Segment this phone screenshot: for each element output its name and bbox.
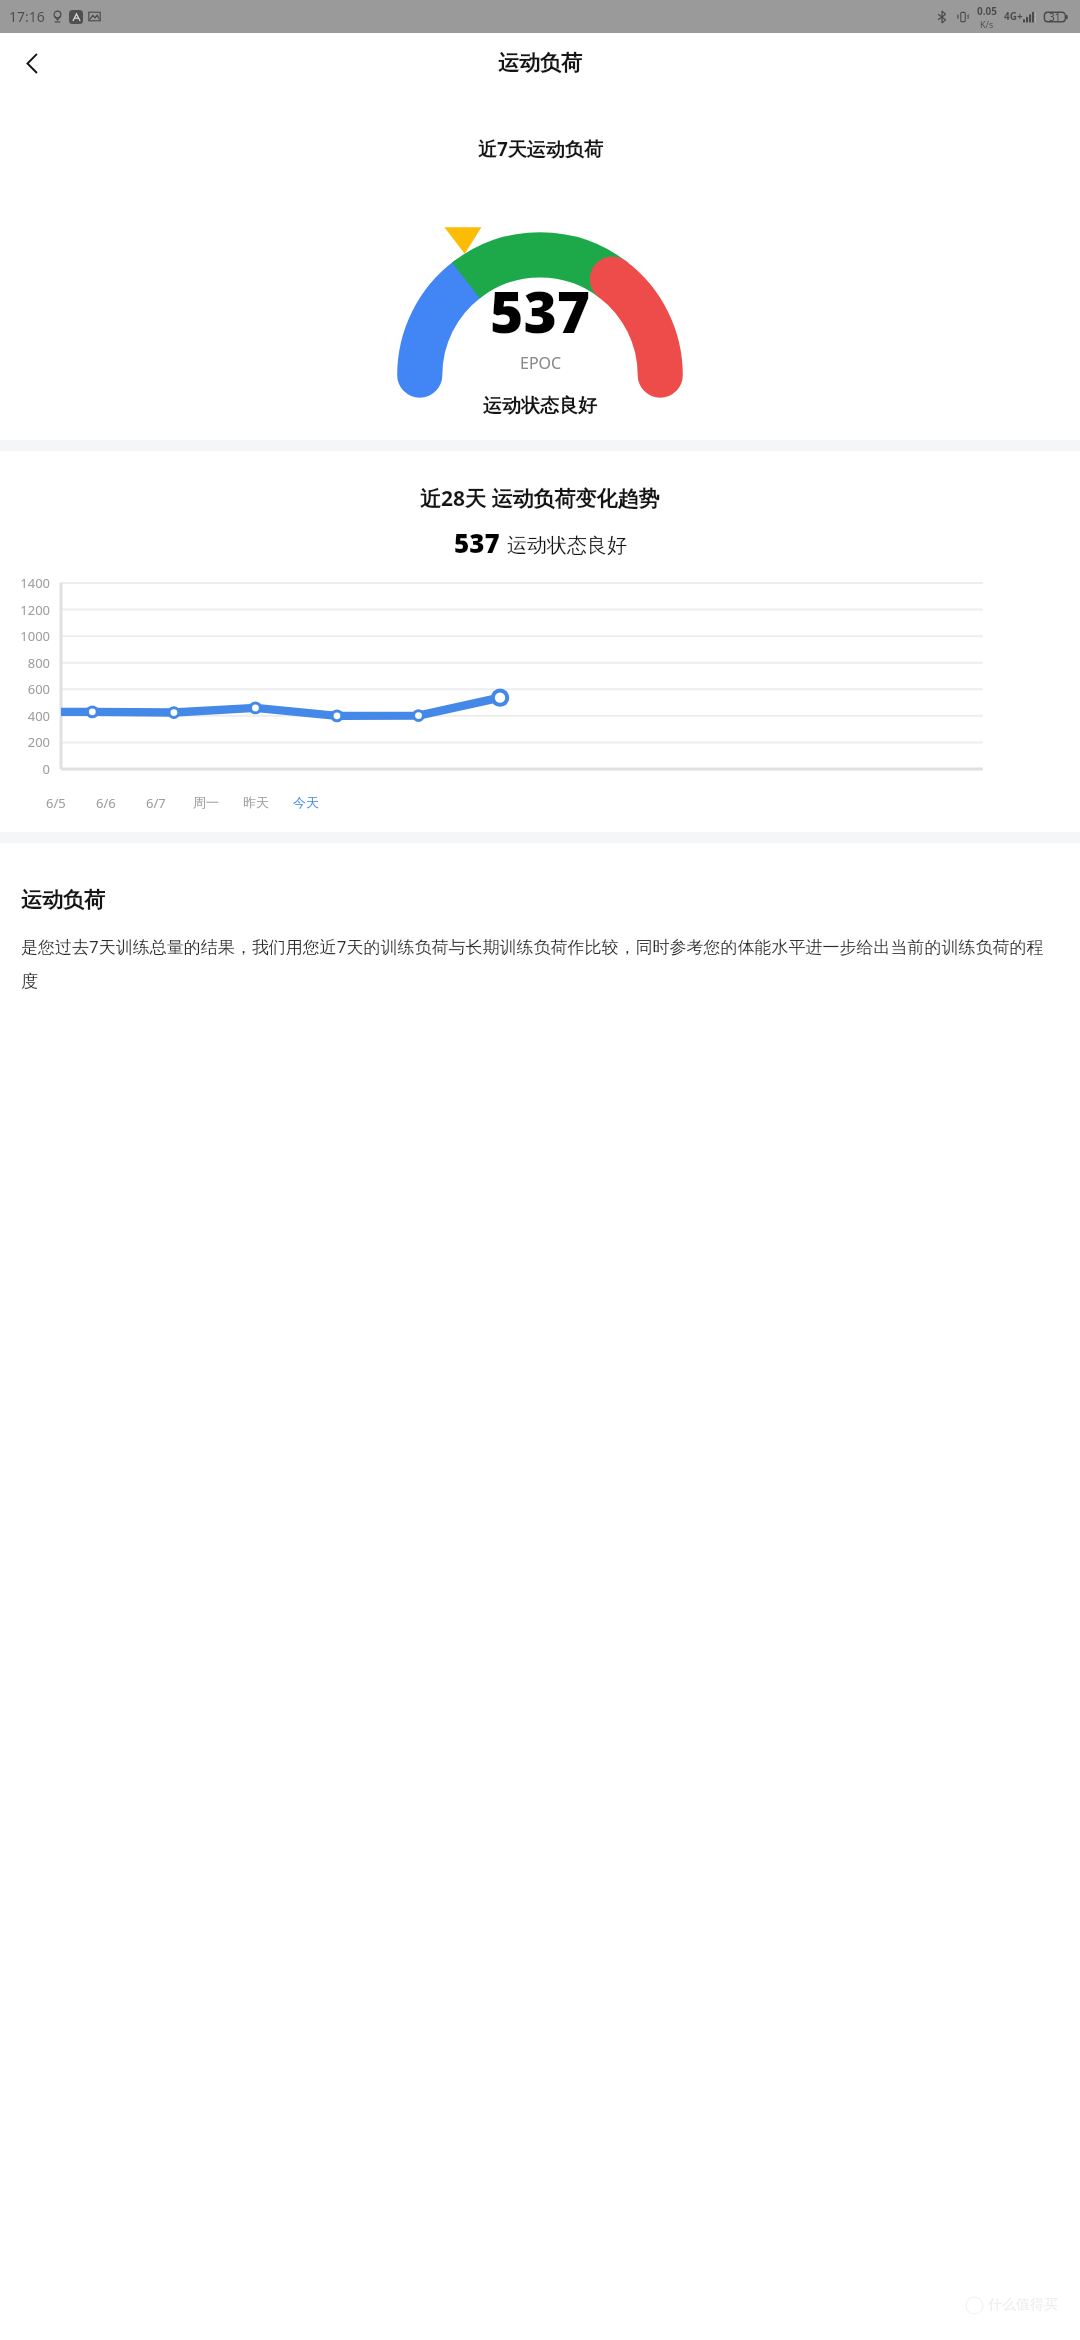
staticText: 1200 [0,601,50,619]
staticText: 4G+ [1004,9,1023,23]
staticText: 0 [0,760,50,778]
staticText: 0.05 [977,4,997,18]
staticText: EPOC [520,352,562,374]
staticText: 537 [490,272,591,350]
staticText: 昨天 [243,794,269,810]
staticText: 近28天 运动负荷变化趋势 [420,484,660,513]
staticText: 6/6 [96,794,116,812]
staticText: 1000 [0,627,50,645]
staticText: 400 [0,707,50,725]
staticText: 运动状态良好 [483,394,597,418]
staticText: 6/5 [46,794,66,812]
staticText: 今天 [293,794,319,810]
staticText: 537 [454,525,500,560]
staticText: 31 [1049,10,1061,24]
staticText: 是您过去7天训练总量的结果，我们用您近7天的训练负荷与长期训练负荷作比较，同时参… [21,935,1059,992]
staticText: 运动状态良好 [507,533,627,558]
staticText: 6/7 [146,794,166,812]
staticText: K/s [980,18,994,30]
staticText: 1400 [0,574,50,592]
staticText: 什么值得买 [988,2296,1058,2314]
staticText: 200 [0,733,50,751]
staticText: 近7天运动负荷 [478,136,603,162]
staticText: 运动负荷 [21,887,105,913]
staticText: 周一 [193,794,219,810]
staticText: 600 [0,680,50,698]
staticText: 17:16 [9,7,45,26]
staticText: 运动负荷 [498,50,582,76]
button[interactable]: Back [6,37,58,89]
staticText: 800 [0,654,50,672]
